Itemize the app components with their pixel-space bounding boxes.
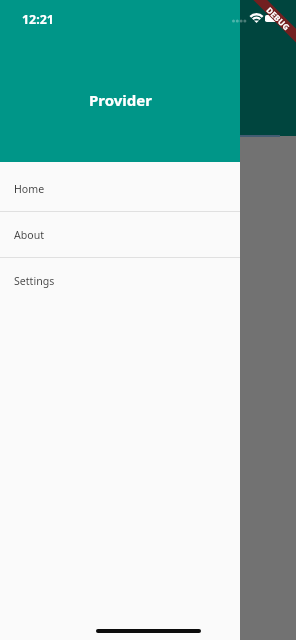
button[interactable]: Settings bbox=[0, 258, 240, 303]
button[interactable]: About bbox=[0, 212, 240, 257]
staticText: Settings bbox=[14, 274, 55, 288]
staticText: DEBUG bbox=[264, 4, 293, 33]
staticText: About bbox=[14, 228, 45, 242]
staticText: Home bbox=[14, 182, 45, 196]
button[interactable]: Home bbox=[0, 166, 240, 211]
staticText: 12:21 bbox=[22, 11, 54, 28]
staticText: Provider bbox=[89, 90, 152, 110]
